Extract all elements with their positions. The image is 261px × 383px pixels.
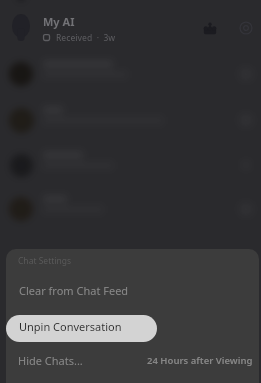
button[interactable]: Clear from Chat Feed [6, 280, 259, 300]
staticText: My AI [43, 14, 75, 29]
button[interactable]: Unpin Conversation [6, 315, 157, 342]
button[interactable]: Birthday [199, 17, 221, 39]
staticText: Received · 3w [56, 32, 116, 44]
staticText: Hide Chats... [18, 353, 83, 368]
button[interactable]: Hide Chats... [5, 349, 259, 371]
button[interactable]: Camera [235, 17, 257, 39]
button[interactable]: My AI [0, 6, 261, 51]
staticText: 24 Hours after Viewing [147, 354, 253, 367]
staticText: Clear from Chat Feed [19, 283, 129, 298]
staticText: Unpin Conversation [19, 319, 122, 334]
staticText: Chat Settings [18, 255, 72, 267]
